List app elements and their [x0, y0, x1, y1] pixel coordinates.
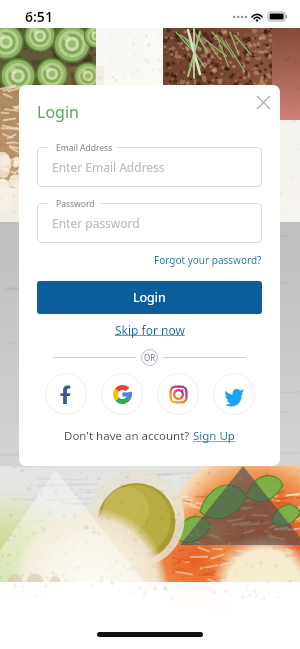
staticText: Password	[56, 198, 95, 210]
button[interactable]: Instagram	[157, 373, 199, 415]
button[interactable]: Close	[248, 87, 278, 117]
button[interactable]: Google	[101, 373, 143, 415]
staticText: Enter password	[52, 215, 140, 231]
staticText: Login	[37, 101, 79, 123]
button[interactable]: Forgot your password?	[154, 253, 262, 267]
button[interactable]: Login	[37, 281, 262, 314]
staticText: OR	[144, 352, 156, 363]
staticText: 6:51	[25, 7, 53, 26]
staticText: Enter Email Address	[52, 159, 165, 175]
button[interactable]: Sign Up	[193, 428, 235, 444]
staticText: Don't have an account?	[64, 428, 193, 444]
staticText: Login	[133, 289, 166, 306]
button[interactable]: Twitter	[213, 373, 255, 415]
button[interactable]: Skip for now	[115, 321, 185, 339]
button[interactable]: Facebook	[45, 373, 87, 415]
staticText: Email Address	[56, 142, 113, 154]
